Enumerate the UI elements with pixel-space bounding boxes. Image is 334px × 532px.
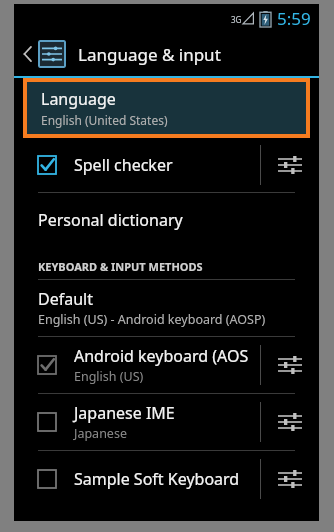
button[interactable]: Settings: [261, 394, 319, 450]
button[interactable]: Japanese IME: [14, 394, 260, 450]
button[interactable]: Settings: [261, 337, 319, 393]
button[interactable]: Settings: [261, 451, 319, 507]
staticText: Default: [38, 288, 93, 310]
staticText: 3G: [231, 14, 242, 25]
staticText: Japanese IME: [74, 402, 175, 424]
staticText: Sample Soft Keyboard: [74, 468, 240, 490]
button[interactable]: Settings: [261, 138, 319, 192]
staticText: Japanese: [74, 425, 127, 442]
other: Back: [22, 43, 34, 65]
staticText: Language: [41, 88, 116, 110]
button[interactable]: Default: [14, 280, 319, 336]
button[interactable]: Personal dictionary: [14, 193, 319, 247]
staticText: Spell checker: [74, 154, 173, 176]
staticText: 5:59: [277, 7, 311, 30]
staticText: English (United States): [41, 112, 168, 128]
button[interactable]: Language: [27, 82, 306, 134]
staticText: Personal dictionary: [38, 209, 183, 231]
button[interactable]: Sample Soft Keyboard: [14, 451, 260, 507]
staticText: Language & input: [78, 43, 221, 66]
staticText: Android keyboard (AOS: [74, 345, 249, 367]
button[interactable]: Android keyboard (AOS: [14, 337, 260, 393]
staticText: English (US) - Android keyboard (AOSP): [38, 311, 266, 328]
button[interactable]: Spell checker: [14, 138, 260, 192]
button[interactable]: Back: [14, 32, 319, 76]
staticText: English (US): [74, 368, 144, 385]
staticText: KEYBOARD & INPUT METHODS: [38, 259, 203, 274]
